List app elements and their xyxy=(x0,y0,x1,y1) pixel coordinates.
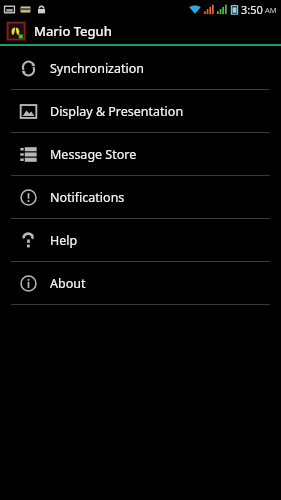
staticText: About xyxy=(50,275,86,292)
staticText: 3:50 xyxy=(241,2,263,17)
staticText: Synchronization xyxy=(50,60,145,77)
staticText: Notifications xyxy=(50,189,125,206)
button[interactable]: Message Store xyxy=(0,133,281,175)
button[interactable]: Display & Presentation xyxy=(0,90,281,132)
button[interactable]: Notifications xyxy=(0,176,281,218)
staticText: Help xyxy=(50,232,78,249)
button[interactable]: Help xyxy=(0,219,281,261)
button[interactable]: Synchronization xyxy=(0,47,281,89)
staticText: Message Store xyxy=(50,146,137,163)
staticText: Display & Presentation xyxy=(50,103,184,120)
staticText: AM xyxy=(265,5,277,15)
staticText: Mario Teguh xyxy=(34,22,112,40)
button[interactable]: About xyxy=(0,262,281,304)
